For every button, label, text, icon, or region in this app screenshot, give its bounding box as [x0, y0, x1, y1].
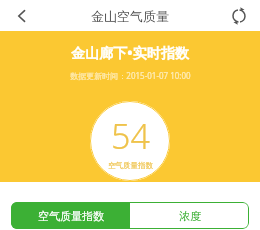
staticText: 金山廊下•实时指数: [71, 43, 189, 62]
button[interactable]: 空气质量指数: [11, 202, 130, 229]
button[interactable]: 浓度: [130, 202, 249, 229]
staticText: 空气质量指数: [108, 161, 153, 170]
staticText: 浓度: [179, 209, 201, 223]
button[interactable]: Refresh: [225, 2, 253, 30]
staticText: 数据更新时间：2015-01-07 10:00: [70, 70, 191, 81]
button[interactable]: Back: [6, 0, 38, 31]
staticText: 金山空气质量: [91, 8, 169, 24]
staticText: 空气质量指数: [38, 209, 104, 223]
staticText: 54: [111, 113, 150, 159]
button[interactable]: 54: [90, 101, 170, 181]
